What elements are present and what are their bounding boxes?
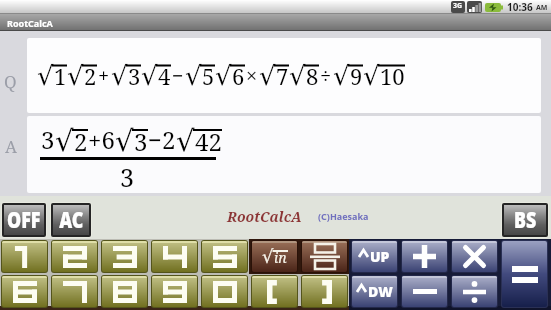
button[interactable]: [502, 241, 547, 307]
staticText: √: [67, 61, 84, 91]
staticText: 3G: [453, 1, 463, 11]
button[interactable]: OFF: [4, 205, 44, 235]
staticText: UP: [370, 247, 390, 266]
staticText: 3: [120, 160, 134, 193]
staticText: √: [215, 61, 232, 91]
staticText: ÷: [320, 62, 332, 89]
button[interactable]: [152, 276, 197, 307]
staticText: √: [115, 124, 134, 158]
button[interactable]: [302, 241, 347, 272]
staticText: 2: [84, 61, 97, 91]
staticText: √: [259, 61, 276, 91]
staticText: +: [98, 62, 110, 89]
staticText: 3: [41, 123, 55, 156]
staticText: 10:36: [507, 0, 536, 14]
staticText: 42: [195, 125, 222, 158]
staticText: 7: [276, 61, 289, 91]
staticText: 8: [306, 61, 319, 91]
staticText: 10: [380, 61, 405, 91]
staticText: √: [176, 124, 195, 158]
staticText: 9: [350, 61, 363, 91]
staticText: AM: [536, 3, 548, 13]
button[interactable]: [2, 241, 47, 272]
staticText: 4: [158, 61, 171, 91]
button[interactable]: UP: [352, 241, 397, 272]
button[interactable]: [452, 276, 497, 307]
staticText: (C)Haesaka: [318, 210, 369, 222]
staticText: 5: [202, 61, 215, 91]
staticText: √: [185, 61, 202, 91]
staticText: √: [111, 61, 128, 91]
button[interactable]: [2, 276, 47, 307]
staticText: √: [333, 61, 350, 91]
staticText: 1: [54, 61, 67, 91]
staticText: 2: [74, 125, 88, 158]
button[interactable]: [102, 276, 147, 307]
button[interactable]: [52, 241, 97, 272]
button[interactable]: √: [252, 241, 297, 272]
staticText: Q: [4, 70, 17, 93]
button[interactable]: AC: [53, 205, 89, 235]
staticText: 3: [134, 125, 148, 158]
staticText: −: [172, 62, 184, 89]
button[interactable]: [102, 241, 147, 272]
button[interactable]: [402, 241, 447, 272]
button[interactable]: [302, 276, 347, 307]
button[interactable]: [252, 276, 297, 307]
staticText: AC: [59, 205, 84, 236]
staticText: √: [289, 61, 306, 91]
button[interactable]: DW: [352, 276, 397, 307]
staticText: DW: [368, 282, 393, 301]
button[interactable]: [202, 241, 247, 272]
staticText: RootCalcA: [227, 207, 302, 226]
staticText: in: [274, 248, 287, 267]
staticText: A: [5, 135, 17, 158]
staticText: −2: [148, 123, 176, 156]
staticText: +6: [88, 123, 115, 156]
staticText: BS: [514, 205, 537, 236]
button[interactable]: [52, 276, 97, 307]
staticText: 6: [232, 61, 245, 91]
button[interactable]: [202, 276, 247, 307]
button[interactable]: BS: [504, 205, 546, 235]
staticText: RootCalcA: [7, 17, 53, 29]
staticText: ×: [246, 62, 258, 89]
staticText: √: [141, 61, 158, 91]
staticText: 3: [128, 61, 141, 91]
button[interactable]: [452, 241, 497, 272]
staticText: OFF: [7, 205, 41, 236]
button[interactable]: [402, 276, 447, 307]
button[interactable]: [152, 241, 197, 272]
staticText: √: [363, 61, 380, 91]
staticText: √: [37, 61, 54, 91]
staticText: √: [262, 246, 274, 267]
staticText: √: [55, 124, 74, 158]
